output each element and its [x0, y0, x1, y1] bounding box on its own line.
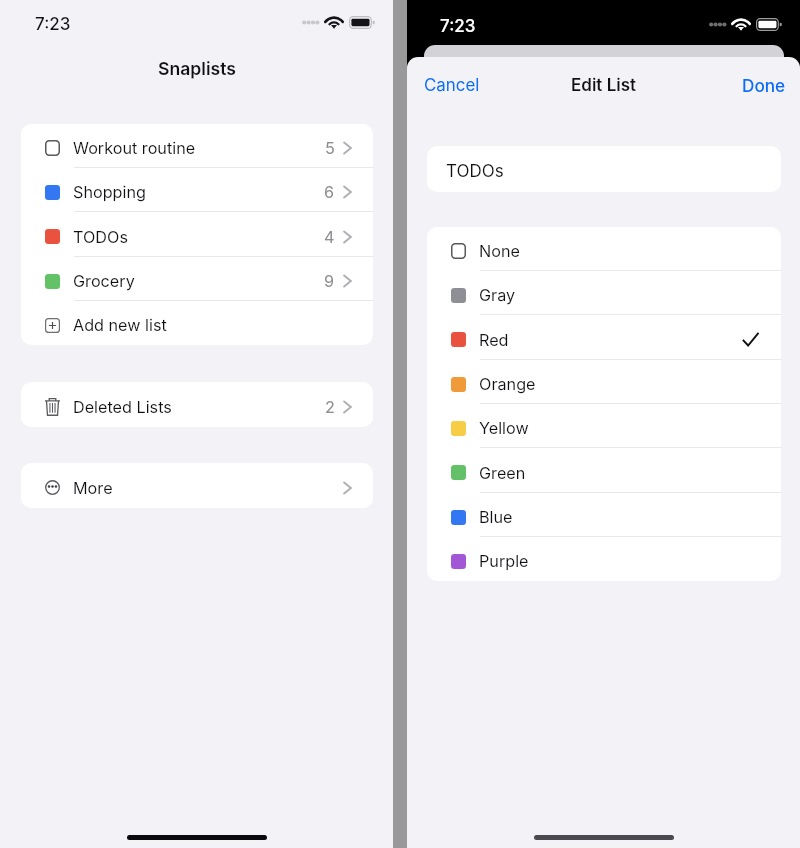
- staticText: Yellow: [479, 418, 529, 438]
- button[interactable]: Done: [728, 63, 800, 104]
- button[interactable]: Gray: [427, 271, 781, 315]
- staticText: Done: [742, 75, 786, 96]
- staticText: Cancel: [424, 75, 480, 95]
- button[interactable]: Add new list: [21, 301, 373, 345]
- button[interactable]: More: [21, 463, 373, 508]
- staticText: TODOs: [446, 161, 504, 182]
- staticText: 9: [324, 271, 335, 291]
- staticText: 6: [324, 182, 335, 202]
- staticText: Purple: [479, 551, 529, 571]
- staticText: More: [73, 478, 113, 498]
- staticText: 7:23: [440, 16, 476, 37]
- staticText: Red: [479, 330, 509, 350]
- button[interactable]: Blue: [427, 493, 781, 537]
- button[interactable]: TODOs: [427, 146, 781, 192]
- staticText: Workout routine: [73, 138, 196, 158]
- button[interactable]: None: [427, 227, 781, 271]
- staticText: Deleted Lists: [73, 397, 172, 417]
- staticText: 4: [324, 227, 335, 247]
- staticText: Blue: [479, 507, 513, 527]
- button[interactable]: Workout routine: [21, 124, 373, 168]
- staticText: Orange: [479, 374, 536, 394]
- button[interactable]: Deleted Lists: [21, 382, 373, 427]
- staticText: Snaplists: [158, 58, 236, 79]
- button[interactable]: Shopping: [21, 168, 373, 212]
- staticText: Green: [479, 463, 526, 483]
- staticText: 2: [325, 397, 335, 417]
- staticText: 7:23: [35, 14, 71, 35]
- staticText: None: [479, 241, 520, 261]
- button[interactable]: Purple: [427, 537, 781, 581]
- button[interactable]: Green: [427, 448, 781, 493]
- button[interactable]: Yellow: [427, 404, 781, 448]
- staticText: Gray: [479, 285, 516, 305]
- button[interactable]: Orange: [427, 360, 781, 404]
- button[interactable]: Cancel: [407, 63, 494, 103]
- button[interactable]: Grocery: [21, 257, 373, 301]
- staticText: 5: [325, 138, 335, 158]
- staticText: Grocery: [73, 271, 135, 291]
- staticText: TODOs: [73, 227, 128, 247]
- button[interactable]: TODOs: [21, 212, 373, 257]
- staticText: Shopping: [73, 182, 146, 202]
- staticText: Edit List: [571, 75, 637, 96]
- button[interactable]: Red: [427, 315, 781, 360]
- staticText: Add new list: [73, 315, 167, 335]
